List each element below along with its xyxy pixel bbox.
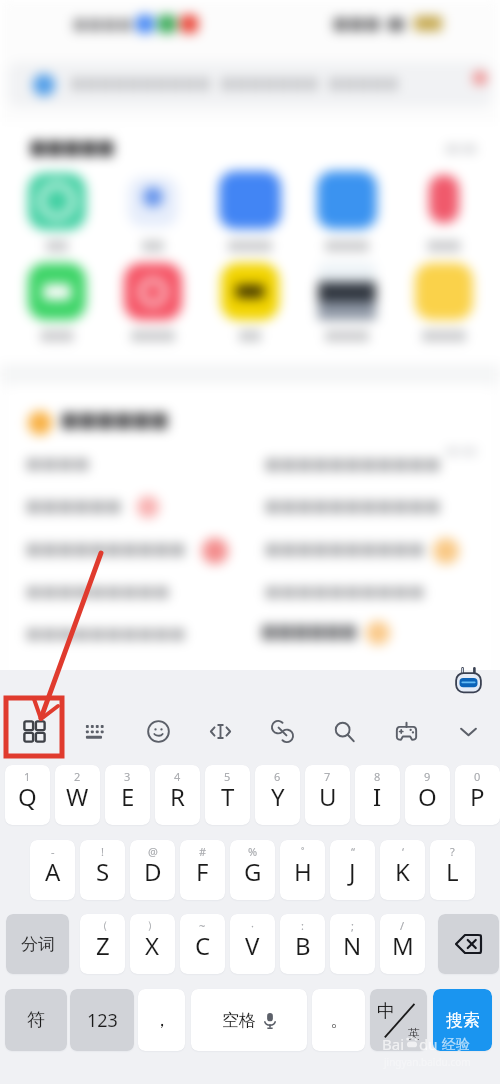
button[interactable]: Keyboard bbox=[77, 712, 115, 750]
staticText: W bbox=[66, 780, 89, 813]
button[interactable]: Hide keyboard bbox=[449, 712, 487, 750]
staticText: 9 bbox=[424, 769, 431, 784]
staticText: L bbox=[446, 855, 459, 888]
staticText: D bbox=[144, 855, 162, 888]
staticText: Y bbox=[271, 780, 285, 813]
staticText: · bbox=[251, 918, 254, 933]
staticText: M bbox=[392, 929, 414, 962]
staticText: 分词 bbox=[21, 934, 55, 955]
button[interactable]: 0 bbox=[455, 765, 500, 825]
button[interactable]: 3 bbox=[105, 765, 150, 825]
staticText: ， bbox=[153, 1009, 171, 1032]
staticText: 1 bbox=[24, 769, 31, 784]
staticText: I bbox=[373, 780, 382, 813]
button[interactable]: Clipboard bbox=[263, 712, 301, 750]
button[interactable]: 2 bbox=[55, 765, 100, 825]
button[interactable]: 搜索 bbox=[433, 989, 492, 1051]
staticText: / bbox=[400, 918, 405, 933]
staticText: ~ bbox=[199, 918, 206, 933]
staticText: T bbox=[221, 780, 235, 813]
staticText: E bbox=[121, 780, 135, 813]
staticText: 中 bbox=[377, 1000, 395, 1023]
staticText: 经验 bbox=[442, 1036, 470, 1054]
staticText: du bbox=[419, 1034, 438, 1054]
staticText: : bbox=[301, 918, 304, 933]
staticText: 123 bbox=[87, 1008, 118, 1033]
staticText: 搜索 bbox=[446, 1010, 480, 1031]
button[interactable]: · bbox=[230, 914, 275, 974]
button[interactable]: : bbox=[280, 914, 325, 974]
button[interactable]: / bbox=[380, 914, 425, 974]
staticText: P bbox=[470, 780, 485, 813]
button[interactable]: 空格 bbox=[191, 989, 307, 1051]
staticText: 2 bbox=[74, 769, 81, 784]
staticText: 8 bbox=[374, 769, 381, 784]
staticText: H bbox=[294, 855, 312, 888]
staticText: J bbox=[349, 855, 356, 888]
staticText: - bbox=[51, 844, 55, 859]
staticText: 4 bbox=[174, 769, 181, 784]
button[interactable]: 1 bbox=[5, 765, 50, 825]
button[interactable]: Backspace bbox=[438, 914, 499, 974]
staticText: “ bbox=[351, 844, 355, 859]
button[interactable]: ? bbox=[430, 840, 475, 900]
staticText: C bbox=[195, 929, 211, 962]
button[interactable]: Keyboard layouts bbox=[15, 712, 53, 750]
staticText: ˚ bbox=[301, 844, 305, 859]
button[interactable]: “ bbox=[330, 840, 375, 900]
button[interactable]: 符 bbox=[5, 989, 67, 1051]
button[interactable]: - bbox=[30, 840, 75, 900]
staticText: X bbox=[145, 929, 160, 962]
button[interactable]: # bbox=[180, 840, 225, 900]
staticText: ） bbox=[147, 918, 158, 932]
button[interactable]: 5 bbox=[205, 765, 250, 825]
button[interactable]: 分词 bbox=[6, 914, 69, 974]
staticText: B bbox=[295, 929, 311, 962]
staticText: % bbox=[248, 844, 258, 859]
staticText: @ bbox=[148, 844, 158, 859]
staticText: F bbox=[196, 855, 209, 888]
button[interactable]: @ bbox=[130, 840, 175, 900]
staticText: 0 bbox=[474, 769, 481, 784]
staticText: Z bbox=[96, 929, 110, 962]
button[interactable]: Emoji bbox=[139, 712, 177, 750]
staticText: 英 bbox=[408, 1026, 420, 1041]
staticText: R bbox=[170, 780, 185, 813]
button[interactable]: 123 bbox=[70, 989, 134, 1051]
staticText: 。 bbox=[330, 1009, 348, 1032]
button[interactable]: 。 bbox=[312, 989, 365, 1051]
staticText: ‘ bbox=[402, 844, 404, 859]
staticText: （ bbox=[97, 918, 108, 932]
staticText: V bbox=[245, 929, 260, 962]
button[interactable]: 9 bbox=[405, 765, 450, 825]
staticText: 符 bbox=[27, 1009, 45, 1032]
button[interactable]: Games bbox=[387, 712, 425, 750]
button[interactable]: % bbox=[230, 840, 275, 900]
button[interactable]: ‘ bbox=[380, 840, 425, 900]
staticText: N bbox=[343, 929, 362, 962]
button[interactable]: ˚ bbox=[280, 840, 325, 900]
staticText: 5 bbox=[224, 769, 231, 784]
staticText: Q bbox=[18, 780, 37, 813]
button[interactable]: ， bbox=[138, 989, 185, 1051]
staticText: 6 bbox=[274, 769, 281, 784]
button[interactable]: Search bbox=[325, 712, 363, 750]
button[interactable]: ） bbox=[130, 914, 175, 974]
button[interactable]: ; bbox=[330, 914, 375, 974]
button[interactable]: 中 bbox=[370, 989, 427, 1051]
button[interactable]: 7 bbox=[305, 765, 350, 825]
staticText: ; bbox=[351, 918, 354, 933]
staticText: ! bbox=[101, 844, 104, 859]
staticText: # bbox=[199, 844, 207, 859]
staticText: A bbox=[45, 855, 61, 888]
button[interactable]: 8 bbox=[355, 765, 400, 825]
button[interactable]: 6 bbox=[255, 765, 300, 825]
button[interactable]: ~ bbox=[180, 914, 225, 974]
staticText: Bai bbox=[382, 1034, 405, 1054]
button[interactable]: Cursor bbox=[201, 712, 239, 750]
button[interactable]: 4 bbox=[155, 765, 200, 825]
button[interactable]: Assistant bbox=[451, 663, 485, 697]
button[interactable]: （ bbox=[80, 914, 125, 974]
button[interactable]: ! bbox=[80, 840, 125, 900]
